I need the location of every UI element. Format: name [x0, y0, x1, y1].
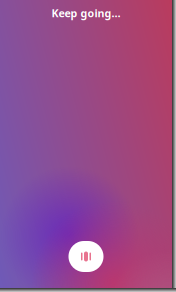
button[interactable]: Pause session	[68, 241, 103, 272]
staticText: Keep going…	[51, 6, 120, 20]
